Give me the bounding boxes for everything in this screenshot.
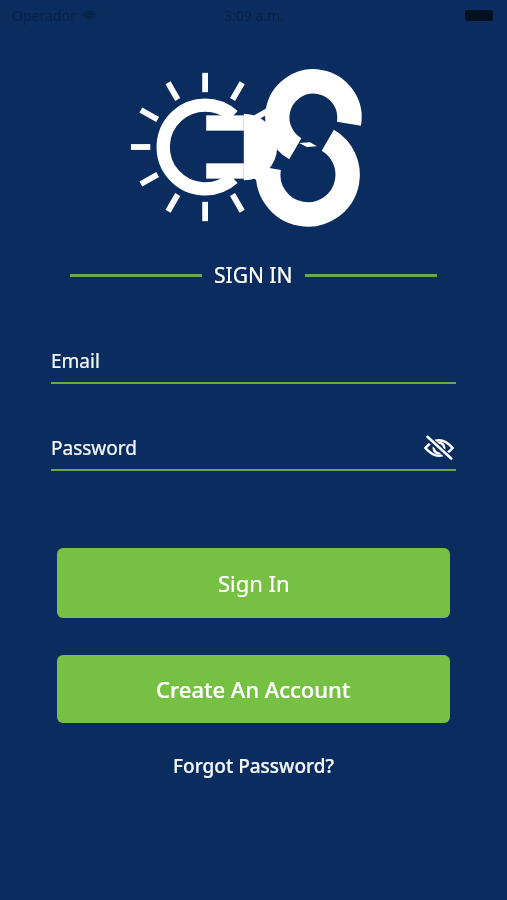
staticText: Operador <box>12 6 76 25</box>
button[interactable]: Email <box>51 340 456 382</box>
button[interactable]: Show password <box>422 431 456 465</box>
staticText: 3:09 a.m. <box>224 6 284 25</box>
staticText: Password <box>51 435 137 461</box>
button[interactable]: Forgot Password? <box>157 747 350 785</box>
staticText: Sign In <box>218 568 290 598</box>
button[interactable]: Create An Account <box>57 655 450 723</box>
staticText: Forgot Password? <box>173 753 334 779</box>
button[interactable]: Password <box>51 427 456 469</box>
staticText: SIGN IN <box>214 261 293 290</box>
staticText: Create An Account <box>156 674 351 704</box>
staticText: Email <box>51 348 100 374</box>
button[interactable]: Sign In <box>57 548 450 618</box>
